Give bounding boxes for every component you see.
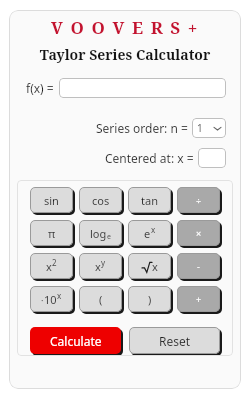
staticText: Calculate xyxy=(50,333,102,349)
staticText: f(x) = xyxy=(26,80,54,96)
staticText: ) xyxy=(148,292,152,307)
button[interactable]: x xyxy=(79,253,122,279)
staticText: x xyxy=(46,259,52,274)
staticText: · xyxy=(41,294,44,306)
button[interactable]: tan xyxy=(128,187,171,213)
button[interactable]: log xyxy=(79,220,122,246)
staticText: 10 xyxy=(44,292,57,307)
button[interactable]: ÷ xyxy=(177,187,220,213)
button[interactable]: Calculate xyxy=(30,327,121,354)
staticText: e xyxy=(144,226,151,241)
button[interactable]: ) xyxy=(128,286,171,312)
staticText: ( xyxy=(99,292,103,307)
staticText: x xyxy=(57,290,62,301)
staticText: - xyxy=(197,260,200,272)
button[interactable]: sin xyxy=(30,187,73,213)
staticText: + xyxy=(196,293,202,305)
staticText: x xyxy=(151,224,156,235)
button[interactable]: x xyxy=(30,253,73,279)
button[interactable]: ( xyxy=(79,286,122,312)
staticText: tan xyxy=(141,193,158,208)
staticText: x xyxy=(152,259,158,274)
staticText: Reset xyxy=(159,333,191,349)
staticText: ÷ xyxy=(196,194,202,206)
staticText: × xyxy=(196,227,202,239)
button[interactable]: π xyxy=(30,220,73,246)
button[interactable]: - xyxy=(177,253,220,279)
staticText: x xyxy=(95,259,101,274)
button[interactable]: Square root of x xyxy=(128,253,171,279)
button[interactable]: + xyxy=(177,286,220,312)
button[interactable]: Center point input xyxy=(198,148,226,168)
button[interactable]: Reset xyxy=(129,327,220,354)
staticText: Centered at: x = xyxy=(105,150,194,166)
button[interactable]: Function input xyxy=(59,78,226,98)
staticText: 2 xyxy=(52,257,57,268)
staticText: cos xyxy=(92,193,110,208)
staticText: y xyxy=(101,257,106,268)
staticText: Taylor Series Calculator xyxy=(9,45,241,64)
button[interactable]: · xyxy=(30,286,73,312)
staticText: 1 xyxy=(197,121,203,135)
staticText: π xyxy=(48,226,56,241)
button[interactable]: e xyxy=(128,220,171,246)
button[interactable]: × xyxy=(177,220,220,246)
staticText: V O O V E R S + xyxy=(9,16,241,39)
button[interactable]: 1 xyxy=(192,118,226,138)
staticText: e xyxy=(107,232,111,242)
staticText: log xyxy=(90,226,107,241)
button[interactable]: cos xyxy=(79,187,122,213)
staticText: sin xyxy=(44,193,59,208)
staticText: Series order: n = xyxy=(96,120,188,136)
